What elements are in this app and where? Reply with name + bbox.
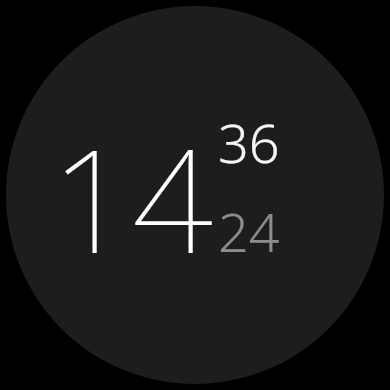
staticText: 24 [218,194,280,268]
button[interactable]: Watch face [6,6,384,384]
staticText: 14 [51,101,213,294]
staticText: 36 [218,105,280,179]
